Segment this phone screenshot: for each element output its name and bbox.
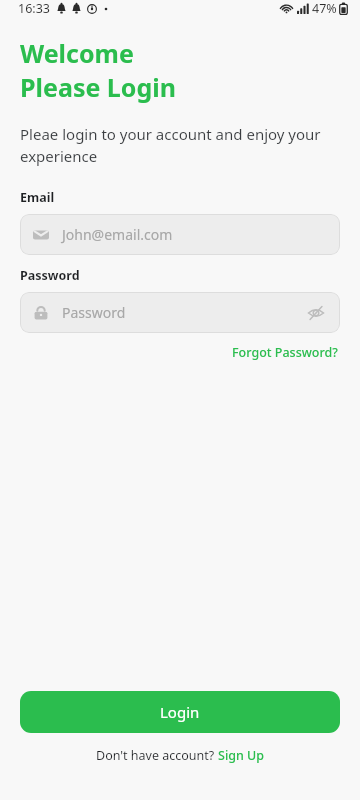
staticText: John@email.com <box>62 225 173 244</box>
button[interactable]: Password <box>20 292 340 333</box>
staticText: Forgot Password? <box>232 344 338 361</box>
staticText: Sign Up <box>218 747 265 764</box>
staticText: Don't have account? <box>96 747 218 764</box>
staticText: Email <box>20 189 55 206</box>
staticText: Welcome <box>20 36 134 70</box>
button[interactable]: Forgot Password? <box>230 342 340 363</box>
staticText: 47% <box>312 0 337 17</box>
button[interactable]: Login <box>20 691 340 733</box>
button[interactable]: Email <box>20 214 340 255</box>
staticText: Login <box>160 702 200 722</box>
staticText: Password <box>20 267 80 284</box>
other: Password <box>33 305 49 321</box>
staticText: Pleae login to your account and enjoy yo… <box>20 124 340 167</box>
staticText: 16:33 <box>18 0 50 17</box>
staticText: Please Login <box>20 70 176 104</box>
other: Email <box>33 227 49 243</box>
staticText: Password <box>62 303 126 322</box>
button[interactable]: Sign Up <box>218 747 265 764</box>
button[interactable]: Show password <box>305 302 327 324</box>
